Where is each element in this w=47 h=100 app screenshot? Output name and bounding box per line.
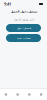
button[interactable]: Orders	[23, 89, 35, 100]
button[interactable]: Profile	[35, 89, 47, 100]
staticText: 9:41	[4, 1, 11, 7]
button[interactable]: Home	[0, 89, 12, 100]
button[interactable]: تسجيل دخول	[6, 24, 41, 32]
staticText: حساب جديد	[16, 36, 30, 39]
button[interactable]: Search	[12, 89, 24, 100]
staticText: تسجيل دخول العميل	[10, 10, 37, 13]
staticText: اختر طريقة الدخول	[13, 18, 34, 21]
staticText: تسجيل دخول	[16, 26, 31, 29]
button[interactable]: حساب جديد	[6, 34, 41, 42]
